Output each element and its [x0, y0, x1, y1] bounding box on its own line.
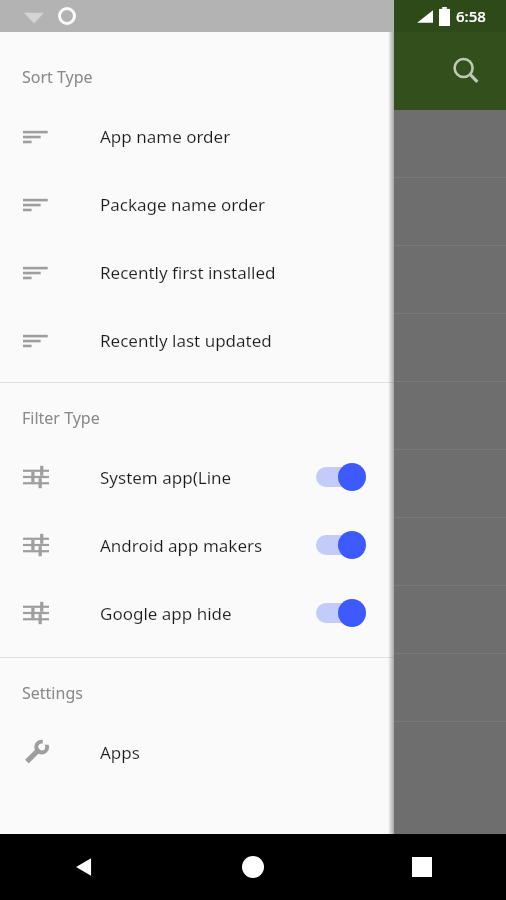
button[interactable]: [0, 586, 506, 654]
staticText: System app(Line: [100, 466, 316, 489]
button[interactable]: Recently first installed: [0, 238, 394, 306]
button[interactable]: [0, 382, 506, 450]
button[interactable]: [0, 246, 506, 314]
staticText: Android app makers: [100, 534, 316, 557]
button[interactable]: [0, 450, 506, 518]
button[interactable]: App name order: [0, 102, 394, 170]
staticText: Settings: [22, 682, 83, 704]
button[interactable]: Search: [442, 47, 490, 95]
button[interactable]: Recently last updated: [0, 306, 394, 374]
staticText: Google app hide: [100, 602, 316, 625]
button[interactable]: System app(Line: [0, 443, 394, 511]
button[interactable]: [0, 518, 506, 586]
staticText: Recently first installed: [100, 261, 276, 284]
staticText: Package name order: [100, 193, 266, 216]
button[interactable]: Back: [0, 834, 168, 900]
button[interactable]: Recents: [337, 834, 506, 900]
button[interactable]: Google app hide: [0, 579, 394, 647]
button[interactable]: Home: [168, 834, 337, 900]
button[interactable]: Android app makers: [0, 511, 394, 579]
button[interactable]: [0, 178, 506, 246]
staticText: Filter Type: [22, 407, 100, 429]
button[interactable]: Package name order: [0, 170, 394, 238]
button[interactable]: [0, 314, 506, 382]
staticText: Apps: [100, 741, 140, 764]
staticText: 6:58: [456, 6, 486, 26]
staticText: Recently last updated: [100, 329, 272, 352]
staticText: Sort Type: [22, 66, 93, 88]
button[interactable]: [0, 110, 506, 178]
button[interactable]: Apps: [0, 718, 394, 786]
button[interactable]: [0, 654, 506, 722]
staticText: App name order: [100, 125, 231, 148]
